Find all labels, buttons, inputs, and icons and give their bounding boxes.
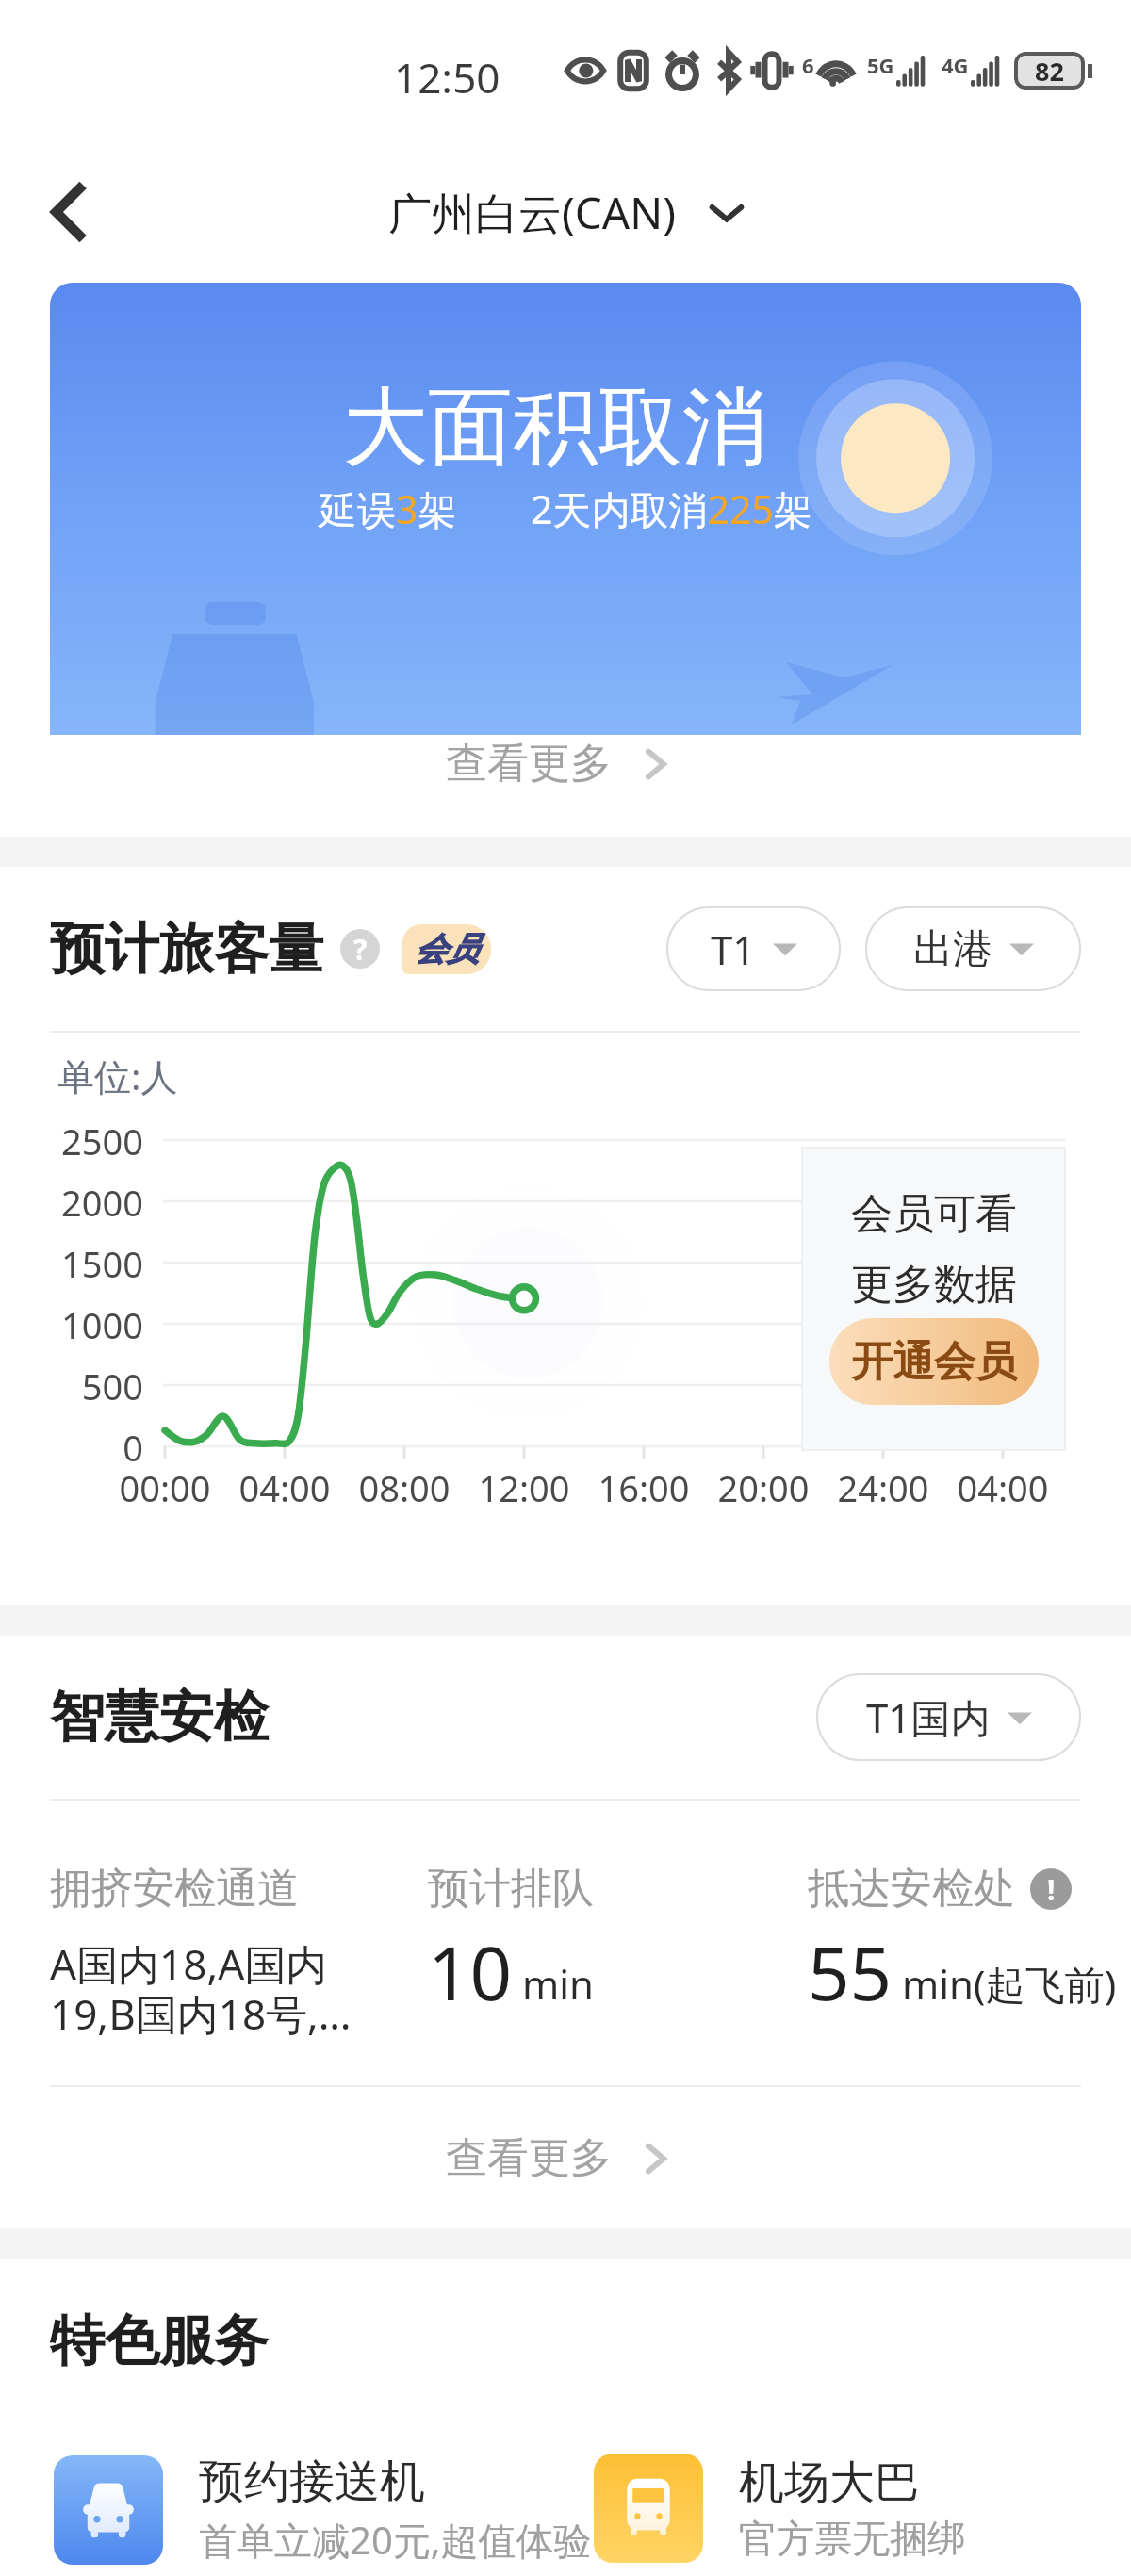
staticText: 82 [1035,54,1064,89]
staticText: A国内18,A国内 19,B国内18号,… [50,1935,352,2042]
button[interactable]: 预约接送机 [54,2454,592,2566]
staticText: 1500 [0,1239,143,1288]
staticText: 6 [802,51,814,79]
staticText: T1国内 [866,1690,991,1744]
staticText: min(起飞前) [902,1957,1117,2011]
button[interactable]: Help [340,929,380,969]
staticText: 智慧安检 [50,1683,269,1752]
staticText: 24:00 [825,1463,942,1512]
staticText: 5G [867,51,894,79]
staticText: 会员可看 [851,1188,1017,1240]
staticText: 开通会员 [851,1336,1017,1388]
staticText: 预约接送机 [199,2454,425,2510]
button[interactable]: 查看更多 [446,738,670,790]
button[interactable]: T1国内 [816,1673,1081,1761]
staticText: ! [1047,1870,1056,1909]
staticText: 2天内取消225架 [531,482,812,535]
staticText: 广州白云(CAN) [388,183,677,242]
button[interactable]: Back [22,165,116,259]
button[interactable]: 开通会员 [829,1318,1039,1405]
staticText: 10 [428,1922,513,2022]
staticText: 20:00 [705,1463,822,1512]
staticText: 大面积取消 [343,374,767,481]
staticText: 2000 [0,1178,143,1227]
staticText: 16:00 [585,1463,702,1512]
button[interactable]: 机场大巴 [594,2454,965,2563]
staticText: 拥挤安检通道 [50,1863,299,1915]
button[interactable]: T1 [666,906,841,991]
button[interactable]: 广州白云(CAN) [388,183,743,242]
staticText: 12:50 [394,49,500,106]
staticText: 官方票无捆绑 [739,2515,965,2562]
staticText: 00:00 [107,1463,223,1512]
staticText: 04:00 [944,1463,1061,1512]
staticText: 55 [808,1922,893,2022]
staticText: 500 [0,1361,143,1410]
staticText: 4G [942,51,969,79]
staticText: 查看更多 [446,738,612,790]
staticText: 会员 [415,929,479,970]
staticText: 更多数据 [851,1259,1017,1311]
button[interactable]: 查看更多 [446,2132,670,2184]
button[interactable]: 大面积取消 [50,283,1081,735]
staticText: 抵达安检处 [808,1863,1015,1915]
staticText: 0 [0,1423,143,1472]
staticText: T1 [711,922,756,976]
button[interactable]: 出港 [865,906,1081,991]
staticText: 12:00 [466,1463,582,1512]
staticText: 单位:人 [57,1051,178,1101]
staticText: 出港 [913,924,992,974]
staticText: 2500 [0,1117,143,1166]
staticText: ? [353,930,368,969]
staticText: 查看更多 [446,2132,612,2184]
button[interactable]: 会员 [402,924,491,974]
staticText: min [522,1957,595,2011]
staticText: 延误3架 [319,482,457,535]
staticText: 机场大巴 [739,2454,920,2511]
staticText: 特色服务 [50,2307,269,2375]
staticText: 预计旅客量 [50,915,323,984]
staticText: 预计排队 [428,1863,594,1915]
staticText: 1000 [0,1300,143,1349]
staticText: 08:00 [346,1463,463,1512]
staticText: 首单立减20元,超值体验 [199,2514,592,2566]
staticText: 04:00 [226,1463,343,1512]
